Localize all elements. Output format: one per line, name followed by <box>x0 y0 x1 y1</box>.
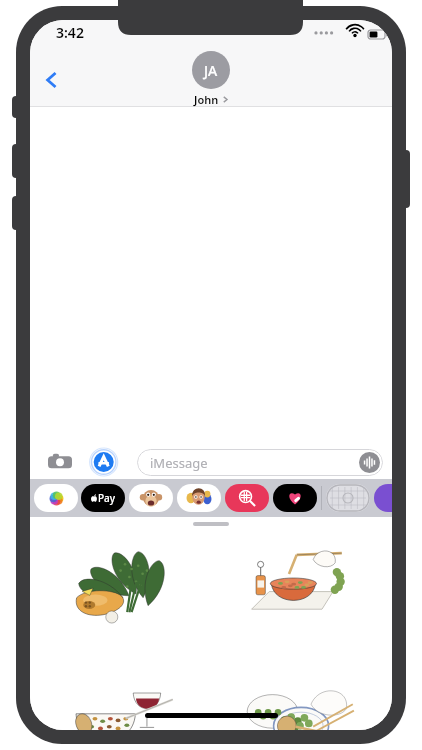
button[interactable]: Memoji stickers <box>177 484 221 512</box>
button[interactable]: JA <box>171 51 251 107</box>
button[interactable]: Grain bowl sticker <box>65 677 175 730</box>
button[interactable]: Memoji <box>129 484 173 512</box>
staticText: John <box>194 92 219 107</box>
button[interactable]: Images <box>225 484 269 512</box>
button[interactable]: iMessage <box>137 449 383 476</box>
button[interactable]: Camera <box>41 443 79 481</box>
staticText: Pay <box>98 491 116 505</box>
staticText: 3:42 <box>56 23 84 42</box>
button[interactable]: iMessage apps <box>86 443 124 481</box>
button[interactable]: Plated dish sticker <box>245 677 355 730</box>
button[interactable]: Resize sticker panel <box>193 522 229 526</box>
button[interactable]: Back <box>32 60 72 100</box>
staticText: iMessage <box>150 454 208 472</box>
button[interactable]: Digital Touch <box>273 484 317 512</box>
button[interactable]: Salad bowl sticker <box>245 542 355 622</box>
button[interactable]: Record audio <box>359 452 380 473</box>
button[interactable]: More apps <box>374 484 392 512</box>
button[interactable]: Sticker pack <box>326 484 370 512</box>
staticText: JA <box>204 61 218 80</box>
button[interactable]: Photos <box>34 484 78 512</box>
button[interactable]: Apple Pay <box>81 484 125 512</box>
button[interactable]: Squash and kale sticker <box>70 545 180 625</box>
